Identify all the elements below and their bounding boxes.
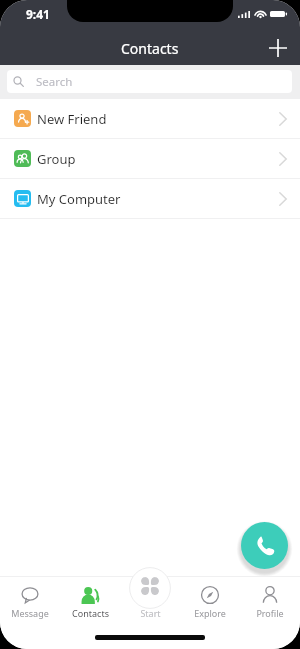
staticText: Search (36, 74, 73, 90)
staticText: Message (11, 607, 49, 619)
button[interactable]: Message (0, 576, 60, 594)
button[interactable]: Add contact (262, 32, 294, 64)
staticText: Profile (256, 607, 284, 619)
staticText: Group (37, 150, 76, 168)
button[interactable]: Search (7, 70, 292, 93)
staticText: My Computer (37, 190, 121, 208)
button[interactable]: Explore (180, 576, 240, 594)
staticText: 9:41 (26, 6, 50, 22)
button[interactable]: New Friend (0, 99, 300, 138)
staticText: Explore (194, 607, 226, 619)
button[interactable]: Start (120, 576, 180, 618)
staticText: Start (140, 607, 161, 619)
staticText: Contacts (72, 607, 109, 619)
button[interactable]: Contacts (60, 576, 120, 594)
button[interactable]: Call (241, 522, 288, 569)
button[interactable]: Profile (240, 576, 300, 594)
button[interactable]: Group (0, 139, 300, 178)
button[interactable]: My Computer (0, 179, 300, 218)
staticText: New Friend (37, 110, 107, 128)
staticText: Contacts (121, 39, 179, 58)
